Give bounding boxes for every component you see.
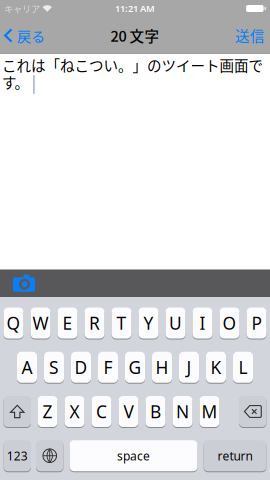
- button[interactable]: Attach photo: [0, 275, 35, 292]
- button[interactable]: N: [172, 395, 192, 427]
- staticText: M: [201, 400, 217, 423]
- staticText: L: [238, 356, 247, 379]
- staticText: C: [96, 400, 107, 423]
- button[interactable]: R: [84, 307, 104, 339]
- staticText: J: [186, 356, 191, 379]
- staticText: K: [210, 356, 221, 379]
- staticText: す。: [2, 71, 29, 92]
- button[interactable]: Next keyboard: [36, 440, 63, 472]
- button[interactable]: F: [98, 351, 118, 383]
- staticText: 戻る: [17, 25, 45, 46]
- button[interactable]: space: [69, 440, 197, 472]
- button[interactable]: M: [199, 395, 219, 427]
- button[interactable]: 送信: [235, 25, 270, 46]
- staticText: Z: [42, 400, 52, 423]
- button[interactable]: G: [125, 351, 145, 383]
- button[interactable]: H: [152, 351, 172, 383]
- button[interactable]: V: [118, 395, 138, 427]
- button[interactable]: U: [165, 307, 185, 339]
- staticText: space: [117, 448, 150, 464]
- staticText: Y: [143, 311, 153, 334]
- button[interactable]: S: [44, 351, 64, 383]
- staticText: W: [32, 311, 48, 334]
- staticText: I: [199, 311, 205, 334]
- button[interactable]: B: [145, 395, 165, 427]
- button[interactable]: L: [233, 351, 253, 383]
- staticText: 11:21 AM: [115, 2, 155, 15]
- staticText: N: [176, 400, 189, 423]
- staticText: return: [217, 448, 252, 464]
- staticText: A: [21, 356, 32, 379]
- staticText: V: [123, 400, 133, 423]
- button[interactable]: Z: [37, 395, 57, 427]
- staticText: 123: [7, 448, 28, 464]
- staticText: E: [62, 311, 72, 334]
- button[interactable]: return: [203, 440, 266, 472]
- button[interactable]: W: [30, 307, 50, 339]
- button[interactable]: Shift: [3, 395, 31, 427]
- button[interactable]: 戻る: [0, 25, 45, 46]
- staticText: S: [49, 356, 59, 379]
- button[interactable]: 123: [3, 440, 31, 472]
- staticText: G: [128, 356, 141, 379]
- staticText: U: [169, 311, 182, 334]
- staticText: H: [155, 356, 168, 379]
- button[interactable]: X: [64, 395, 84, 427]
- button[interactable]: C: [91, 395, 111, 427]
- staticText: T: [116, 311, 126, 334]
- staticText: Q: [6, 311, 20, 334]
- button[interactable]: T: [111, 307, 131, 339]
- staticText: X: [69, 400, 79, 423]
- staticText: P: [251, 311, 261, 334]
- button[interactable]: J: [179, 351, 199, 383]
- button[interactable]: P: [246, 307, 266, 339]
- staticText: B: [150, 400, 161, 423]
- button[interactable]: D: [71, 351, 91, 383]
- staticText: 20 文字: [110, 25, 159, 46]
- staticText: O: [222, 311, 236, 334]
- button[interactable]: E: [57, 307, 77, 339]
- staticText: 送信: [235, 25, 265, 46]
- button[interactable]: I: [192, 307, 212, 339]
- button[interactable]: A: [17, 351, 37, 383]
- button[interactable]: K: [206, 351, 226, 383]
- button[interactable]: O: [219, 307, 239, 339]
- staticText: D: [74, 356, 87, 379]
- staticText: R: [89, 311, 100, 334]
- staticText: これは「ねこつい。」のツイート画面で: [2, 54, 263, 75]
- button[interactable]: Q: [3, 307, 23, 339]
- staticText: キャリア: [4, 2, 40, 15]
- button[interactable]: Y: [138, 307, 158, 339]
- button[interactable]: Delete: [239, 395, 266, 427]
- staticText: F: [103, 356, 112, 379]
